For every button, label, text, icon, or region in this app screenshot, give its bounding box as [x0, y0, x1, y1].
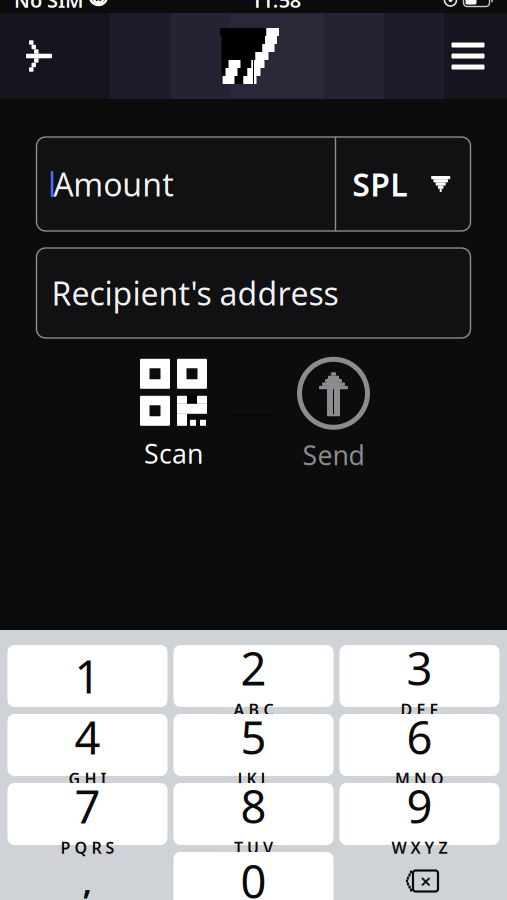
staticText: M N O — [395, 768, 444, 789]
button[interactable]: 9 — [339, 783, 499, 845]
staticText: × — [420, 868, 431, 894]
staticText: G H I — [68, 768, 106, 789]
button[interactable]: Send — [273, 360, 393, 470]
button[interactable]: 6 — [339, 714, 499, 776]
staticText: T U V — [234, 837, 273, 858]
staticText: D E F — [400, 699, 438, 720]
button[interactable]: Delete — [339, 852, 499, 900]
staticText: 1 — [74, 646, 100, 706]
button[interactable]: , — [7, 852, 167, 900]
staticText: A B C — [233, 699, 273, 720]
button[interactable]: 1 — [7, 645, 167, 707]
button[interactable]: Recipient's address — [36, 248, 470, 338]
button[interactable]: SPL — [336, 137, 470, 231]
staticText: 3 — [406, 638, 432, 698]
staticText: P Q R S — [60, 837, 114, 858]
staticText: Recipient's address — [51, 272, 338, 314]
button[interactable]: 7 — [7, 783, 167, 845]
button[interactable]: Amount — [37, 137, 335, 231]
staticText: 5 — [240, 707, 266, 767]
staticText: 8 — [240, 776, 266, 836]
staticText: Send — [302, 437, 364, 473]
button[interactable]: 0 — [173, 852, 333, 900]
button[interactable]: 4 — [7, 714, 167, 776]
staticText: SPL — [352, 163, 407, 205]
staticText: 6 — [406, 707, 432, 767]
button[interactable]: Back — [8, 19, 70, 93]
staticText: No SIM — [14, 0, 84, 13]
staticText: 11:58 — [251, 0, 301, 13]
button[interactable]: Scan — [113, 360, 233, 470]
staticText: J K L — [237, 768, 269, 789]
staticText: 7 — [74, 776, 100, 836]
staticText: 9 — [406, 776, 432, 836]
button[interactable]: 5 — [173, 714, 333, 776]
staticText: Amount — [53, 163, 174, 205]
staticText: 0 — [240, 851, 266, 900]
button[interactable]: Menu — [437, 19, 499, 93]
staticText: 2 — [240, 638, 266, 698]
staticText: W X Y Z — [391, 837, 447, 858]
staticText: , — [82, 858, 92, 900]
button[interactable]: 3 — [339, 645, 499, 707]
button[interactable]: 8 — [173, 783, 333, 845]
staticText: 4 — [74, 707, 100, 767]
button[interactable]: 2 — [173, 645, 333, 707]
staticText: Scan — [144, 436, 203, 471]
